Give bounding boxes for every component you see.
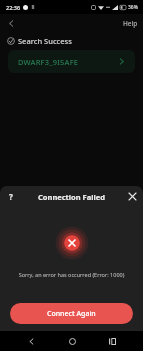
button[interactable]: Close [126, 190, 139, 203]
button[interactable]: Recent apps [102, 331, 122, 351]
button[interactable]: Home [62, 331, 82, 351]
button[interactable]: Back [21, 331, 41, 351]
button[interactable]: Connect Again [10, 303, 133, 324]
staticText: Search Success [18, 36, 72, 46]
staticText: Sorry, an error has occurred (Error: 100… [8, 271, 135, 278]
staticText: 22:36 [6, 4, 21, 11]
staticText: 36% [128, 4, 138, 11]
staticText: Help [123, 19, 138, 28]
button[interactable]: Help [4, 190, 17, 203]
button[interactable]: Help [118, 16, 143, 31]
staticText: DWARF3_9I5AFE [18, 57, 79, 67]
button[interactable]: DWARF3_9I5AFE [8, 50, 135, 73]
button[interactable]: Back [4, 16, 18, 30]
staticText: Connection Failed [38, 192, 105, 202]
staticText: ? [9, 191, 13, 202]
staticText: Connect Again [47, 309, 96, 319]
